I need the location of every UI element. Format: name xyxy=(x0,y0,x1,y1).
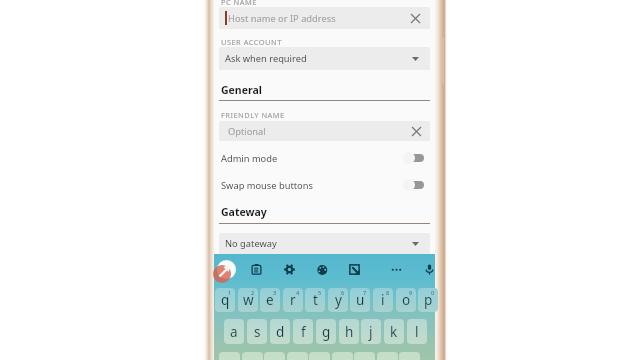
staticText: o xyxy=(402,291,411,309)
staticText: w xyxy=(243,291,254,309)
staticText: Gateway xyxy=(221,205,267,219)
button[interactable]: o xyxy=(396,288,416,312)
staticText: 5 xyxy=(318,289,322,296)
button[interactable]: Settings xyxy=(281,261,297,277)
staticText: y xyxy=(335,291,342,309)
staticText: u xyxy=(356,291,365,309)
button[interactable]: Swap mouse buttons xyxy=(214,172,435,198)
button[interactable] xyxy=(242,352,263,360)
button[interactable]: Optional xyxy=(219,121,430,141)
button[interactable]: f xyxy=(293,319,313,344)
button[interactable]: k xyxy=(384,319,404,344)
staticText: r xyxy=(290,291,296,309)
staticText: Host name or IP address xyxy=(228,12,336,25)
button[interactable]: s xyxy=(247,319,267,344)
button[interactable] xyxy=(309,352,330,360)
button[interactable]: Clipboard xyxy=(248,261,264,277)
staticText: Optional xyxy=(228,125,266,138)
staticText: Swap mouse buttons xyxy=(221,179,313,192)
button[interactable]: h xyxy=(339,319,359,344)
staticText: p xyxy=(424,291,433,309)
staticText: PC NAME xyxy=(221,0,257,7)
staticText: e xyxy=(266,291,274,309)
staticText: 3 xyxy=(273,289,277,296)
button[interactable] xyxy=(287,352,308,360)
staticText: No gateway xyxy=(225,237,277,250)
staticText: 8 xyxy=(386,289,390,296)
button[interactable]: More options xyxy=(388,261,404,277)
staticText: h xyxy=(345,323,354,341)
staticText: f xyxy=(301,323,306,341)
staticText: t xyxy=(313,291,318,309)
staticText: 0 xyxy=(431,289,435,296)
button[interactable]: u xyxy=(350,288,370,312)
button[interactable]: p xyxy=(418,288,438,312)
button[interactable]: Themes xyxy=(314,261,330,277)
button[interactable] xyxy=(332,352,353,360)
staticText: 9 xyxy=(409,289,413,296)
staticText: Admin mode xyxy=(221,152,278,165)
button[interactable]: q xyxy=(215,288,235,312)
staticText: Ask when required xyxy=(225,52,307,65)
button[interactable] xyxy=(219,352,240,360)
staticText: l xyxy=(415,323,419,341)
button[interactable]: e xyxy=(260,288,280,312)
button[interactable]: Google search xyxy=(217,260,236,279)
button[interactable] xyxy=(354,352,375,360)
staticText: 1 xyxy=(228,289,232,296)
button[interactable]: w xyxy=(238,288,258,312)
staticText: 7 xyxy=(363,289,367,296)
button[interactable]: t xyxy=(305,288,325,312)
button[interactable]: Voice input xyxy=(421,261,437,277)
staticText: d xyxy=(276,323,285,341)
staticText: g xyxy=(322,323,331,341)
button[interactable]: y xyxy=(328,288,348,312)
staticText: j xyxy=(369,323,373,341)
staticText: 2 xyxy=(251,289,255,296)
button[interactable]: j xyxy=(361,319,381,344)
staticText: 6 xyxy=(341,289,345,296)
staticText: 4 xyxy=(296,289,300,296)
staticText: i xyxy=(381,291,385,309)
button[interactable] xyxy=(264,352,285,360)
button[interactable]: i xyxy=(373,288,393,312)
staticText: s xyxy=(254,323,261,341)
button[interactable] xyxy=(377,352,398,360)
staticText: q xyxy=(221,291,230,309)
button[interactable]: l xyxy=(407,319,427,344)
staticText: a xyxy=(230,323,238,341)
button[interactable]: d xyxy=(270,319,290,344)
staticText: k xyxy=(390,323,398,341)
staticText: USER ACCOUNT xyxy=(221,37,282,47)
button[interactable]: Clear xyxy=(406,121,426,141)
button[interactable]: No gateway xyxy=(219,233,430,254)
staticText: FRIENDLY NAME xyxy=(221,110,285,120)
button[interactable]: a xyxy=(224,319,244,344)
button[interactable] xyxy=(399,352,420,360)
button[interactable]: g xyxy=(316,319,336,344)
button[interactable]: Stickers xyxy=(346,261,362,277)
button[interactable]: Clear xyxy=(404,7,426,29)
button[interactable]: Admin mode xyxy=(214,145,435,171)
button[interactable]: Host name or IP address xyxy=(219,7,430,29)
staticText: General xyxy=(221,83,262,97)
button[interactable]: Ask when required xyxy=(219,47,430,70)
button[interactable]: r xyxy=(283,288,303,312)
